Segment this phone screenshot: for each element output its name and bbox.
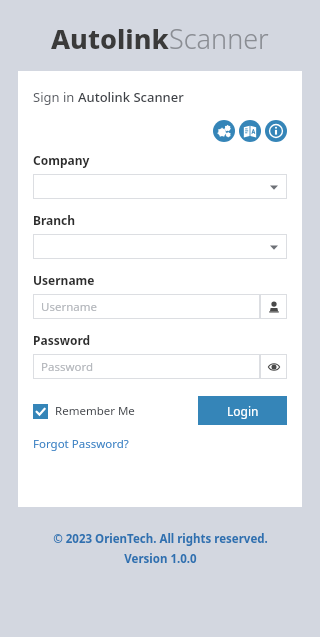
button[interactable]: Password <box>33 354 260 379</box>
staticText: Autolink Scanner <box>78 88 184 106</box>
staticText: Remember Me <box>55 403 135 419</box>
button[interactable]: Remember Me <box>33 403 135 419</box>
staticText: Password <box>33 332 91 348</box>
button[interactable]: Language <box>239 120 261 142</box>
button[interactable]: Select <box>33 174 287 199</box>
button[interactable]: Select <box>33 234 287 259</box>
staticText: Login <box>227 403 259 419</box>
button[interactable]: Information <box>265 120 287 142</box>
button[interactable]: Forgot Password? <box>33 436 129 452</box>
staticText: Sign in <box>33 88 78 106</box>
staticText: Autolink <box>51 20 169 57</box>
staticText: Password <box>41 359 94 375</box>
staticText: Company <box>33 152 90 168</box>
button[interactable]: Username <box>33 294 260 319</box>
button[interactable]: Username <box>260 294 287 319</box>
staticText: Branch <box>33 212 76 228</box>
staticText: Username <box>33 272 95 288</box>
staticText: Username <box>41 299 97 315</box>
button[interactable]: Settings <box>213 120 235 142</box>
staticText: Forgot Password? <box>33 436 129 452</box>
staticText: © 2023 OrienTech. All rights reserved. <box>53 531 268 547</box>
button[interactable]: Show password <box>260 354 287 379</box>
button[interactable]: Login <box>198 396 287 425</box>
staticText: Version 1.0.0 <box>124 551 197 567</box>
staticText: Scanner <box>169 20 269 57</box>
